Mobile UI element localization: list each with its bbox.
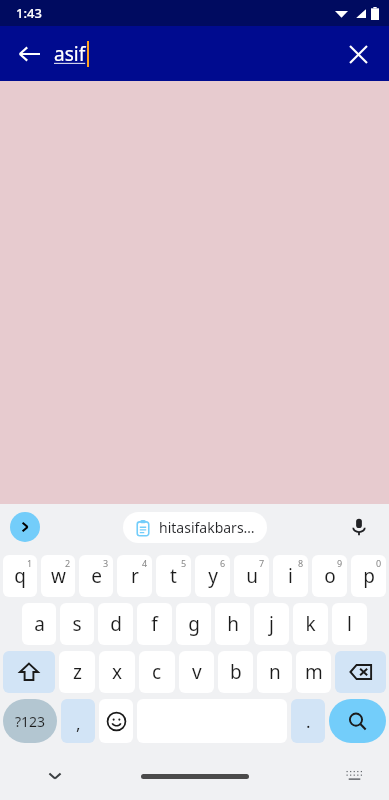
staticText: w	[51, 563, 66, 589]
staticText: 5	[181, 557, 187, 569]
staticText: d	[110, 611, 122, 637]
staticText: asif	[54, 41, 86, 67]
button[interactable]: hitasifakbars…	[123, 512, 267, 543]
staticText: g	[188, 611, 200, 637]
staticText: l	[347, 611, 352, 637]
staticText: 1	[27, 557, 33, 569]
button[interactable]: Comma	[61, 699, 95, 743]
button[interactable]: Clear search	[337, 33, 379, 75]
staticText: 0	[376, 557, 382, 569]
staticText: ,	[76, 712, 81, 735]
button[interactable]: g	[176, 603, 211, 645]
staticText: 1:43	[16, 4, 42, 22]
button[interactable]: c	[139, 651, 175, 693]
button[interactable]: r	[117, 555, 152, 597]
button[interactable]: a	[22, 603, 56, 645]
staticText: q	[14, 563, 26, 589]
button[interactable]: j	[254, 603, 289, 645]
staticText: i	[288, 563, 293, 589]
staticText: r	[131, 563, 139, 589]
button[interactable]: Change keyboard	[339, 761, 369, 791]
button[interactable]: v	[179, 651, 214, 693]
staticText: n	[269, 659, 281, 685]
staticText: x	[112, 659, 123, 685]
staticText: p	[363, 563, 375, 589]
staticText: z	[73, 659, 82, 685]
button[interactable]: Emoji	[99, 699, 133, 743]
staticText: ?123	[15, 712, 46, 731]
staticText: 4	[142, 557, 148, 569]
staticText: u	[246, 563, 258, 589]
staticText: 6	[220, 557, 226, 569]
button[interactable]: t	[156, 555, 191, 597]
button[interactable]: n	[257, 651, 292, 693]
staticText: 9	[337, 557, 343, 569]
staticText: t	[170, 563, 177, 589]
staticText: c	[152, 659, 162, 685]
staticText: e	[91, 563, 102, 589]
staticText: 2	[65, 557, 71, 569]
button[interactable]: ?123	[3, 699, 57, 743]
button[interactable]: Hide keyboard	[38, 759, 72, 793]
button[interactable]: Back	[8, 33, 50, 75]
button[interactable]: w	[41, 555, 75, 597]
staticText: y	[208, 563, 218, 589]
staticText: j	[269, 611, 274, 637]
staticText: m	[305, 659, 323, 685]
button[interactable]: s	[60, 603, 94, 645]
button[interactable]: Period	[291, 699, 325, 743]
button[interactable]: q	[3, 555, 37, 597]
staticText: 8	[298, 557, 304, 569]
button[interactable]: d	[98, 603, 133, 645]
staticText: 7	[259, 557, 265, 569]
staticText: f	[151, 611, 158, 637]
button[interactable]: y	[195, 555, 230, 597]
button[interactable]: asif	[54, 41, 89, 67]
staticText: b	[230, 659, 242, 685]
staticText: .	[306, 710, 311, 733]
button[interactable]: p	[351, 555, 386, 597]
staticText: o	[324, 563, 336, 589]
button[interactable]: f	[137, 603, 172, 645]
staticText: a	[34, 611, 45, 637]
button[interactable]: Search	[329, 699, 386, 743]
button[interactable]: z	[59, 651, 95, 693]
staticText: v	[192, 659, 202, 685]
button[interactable]: u	[234, 555, 269, 597]
button[interactable]: e	[79, 555, 113, 597]
staticText: hitasifakbars…	[159, 518, 255, 537]
staticText: s	[72, 611, 82, 637]
button[interactable]: b	[218, 651, 253, 693]
button[interactable]: h	[215, 603, 250, 645]
button[interactable]: l	[332, 603, 367, 645]
button[interactable]: Expand toolbar	[10, 512, 40, 542]
button[interactable]: Backspace	[335, 651, 386, 693]
button[interactable]: i	[273, 555, 308, 597]
staticText: 3	[103, 557, 109, 569]
button[interactable]: o	[312, 555, 347, 597]
button[interactable]: x	[99, 651, 135, 693]
button[interactable]: Shift	[3, 651, 55, 693]
button[interactable]: Voice input	[343, 511, 375, 543]
button[interactable]: k	[293, 603, 328, 645]
staticText: k	[305, 611, 316, 637]
staticText: h	[227, 611, 239, 637]
button[interactable]: m	[296, 651, 331, 693]
